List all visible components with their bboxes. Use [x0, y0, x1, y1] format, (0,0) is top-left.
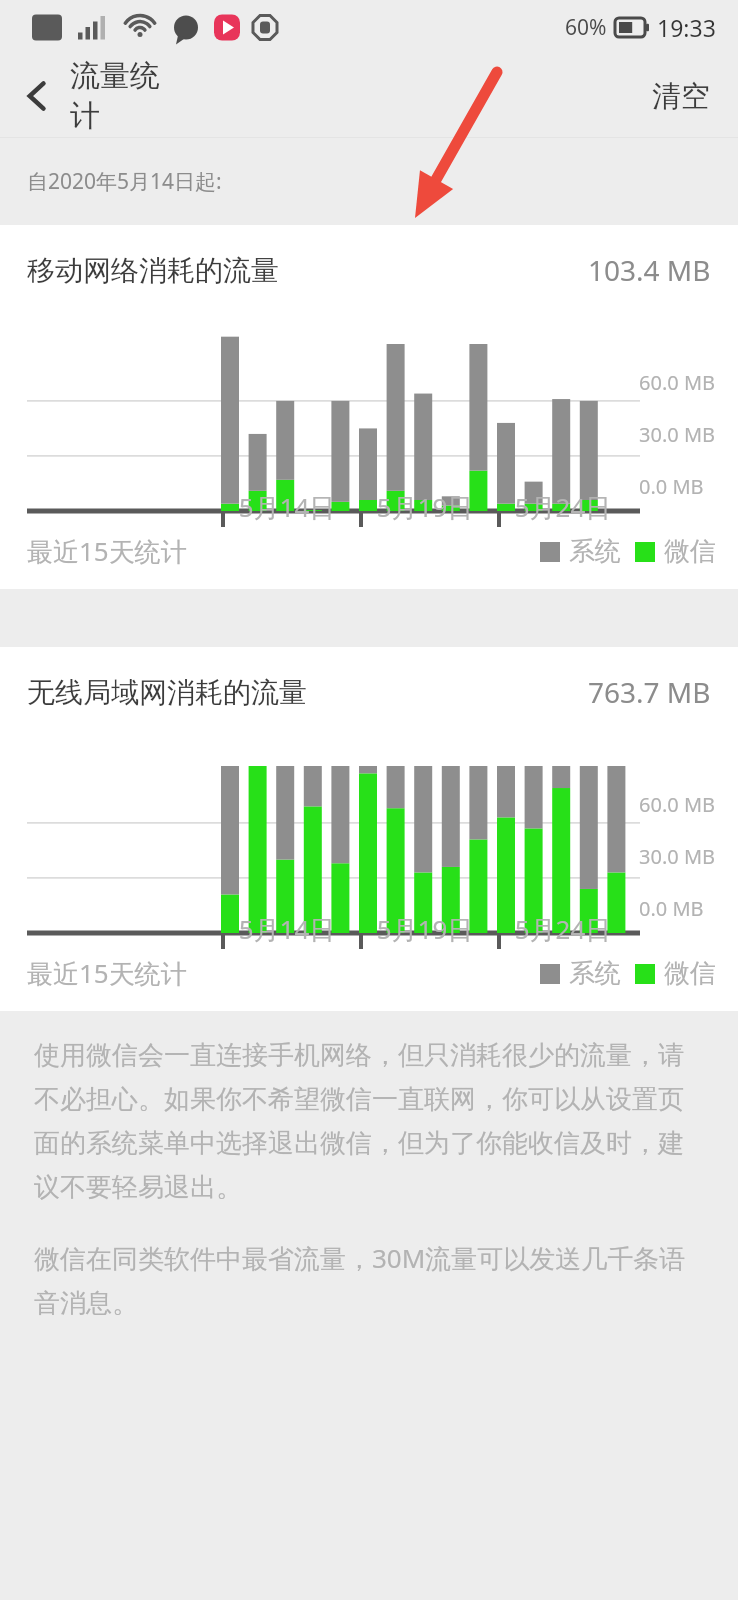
button[interactable]: 移动网络消耗的流量	[0, 225, 738, 589]
staticText: 流量统计	[70, 57, 160, 135]
staticText: 无线局域网消耗的流量	[27, 675, 307, 710]
staticText: 103.4 MB	[588, 251, 711, 289]
staticText: 19:33	[657, 12, 716, 43]
staticText: 微信	[664, 957, 716, 990]
staticText: 微信在同类软件中最省流量，30M流量可以发送几千条语音消息。	[34, 1240, 704, 1320]
staticText: 60%	[565, 13, 607, 42]
staticText: 60.0 MB	[639, 791, 716, 818]
staticText: 60.0 MB	[639, 369, 716, 396]
button[interactable]: Back	[0, 55, 160, 137]
staticText: 移动网络消耗的流量	[27, 253, 279, 288]
staticText: 系统	[569, 957, 621, 990]
staticText: 5月14日	[218, 911, 356, 947]
staticText: 0.0 MB	[639, 473, 704, 500]
staticText: 5月24日	[494, 489, 632, 525]
staticText: 5月19日	[356, 489, 494, 525]
staticText: 系统	[569, 535, 621, 568]
staticText: 30.0 MB	[639, 843, 716, 870]
staticText: 0.0 MB	[639, 895, 704, 922]
staticText: 763.7 MB	[588, 673, 711, 711]
button[interactable]: 清空	[624, 55, 738, 137]
staticText: 5月19日	[356, 911, 494, 947]
staticText: 清空	[652, 78, 710, 115]
staticText: 最近15天统计	[27, 533, 187, 569]
staticText: 自2020年5月14日起:	[27, 167, 222, 196]
staticText: 5月14日	[218, 489, 356, 525]
staticText: 使用微信会一直连接手机网络，但只消耗很少的流量，请不必担心。如果你不希望微信一直…	[34, 1039, 704, 1204]
staticText: 最近15天统计	[27, 955, 187, 991]
staticText: 5月24日	[494, 911, 632, 947]
staticText: 微信	[664, 535, 716, 568]
button[interactable]: 无线局域网消耗的流量	[0, 647, 738, 1011]
staticText: 30.0 MB	[639, 421, 716, 448]
